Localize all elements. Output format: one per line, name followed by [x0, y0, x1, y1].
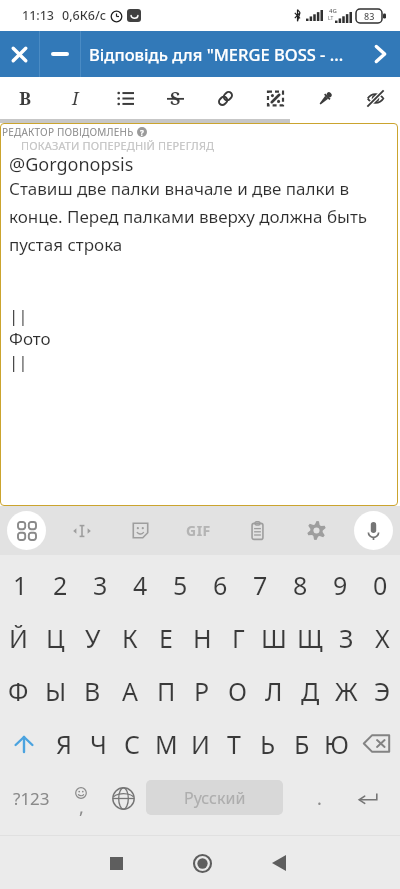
button[interactable]: С [115, 717, 149, 770]
button[interactable]: Emoji and comma [60, 776, 102, 820]
button[interactable]: Ж [328, 664, 364, 717]
staticText: 11:13 [22, 7, 55, 24]
button[interactable]: 1 [0, 558, 40, 611]
button[interactable]: Э [364, 664, 400, 717]
button[interactable]: Clipboard [228, 506, 287, 555]
staticText: 1 [13, 568, 28, 602]
button[interactable]: Strikethrough [150, 77, 200, 119]
button[interactable]: Keyboard options [0, 506, 53, 555]
button[interactable]: П [148, 664, 184, 717]
button[interactable]: М [149, 717, 183, 770]
button[interactable]: Change language [102, 776, 144, 820]
staticText: Я [56, 727, 72, 761]
staticText: Ы [45, 674, 67, 708]
button[interactable]: Send [360, 31, 400, 77]
staticText: 7 [253, 568, 268, 602]
staticText: Н [193, 621, 212, 655]
button[interactable]: Ю [319, 717, 353, 770]
staticText: И [191, 727, 210, 761]
button[interactable]: 0 [360, 558, 400, 611]
button[interactable]: Я [47, 717, 81, 770]
button[interactable]: Ь [251, 717, 285, 770]
staticText: Ставиш две палки вначале и две палки в к… [9, 177, 377, 256]
button[interactable]: Ч [81, 717, 115, 770]
button[interactable]: Русский [146, 780, 283, 815]
button[interactable]: Recents [82, 841, 150, 885]
button[interactable]: Й [0, 611, 37, 664]
button[interactable]: ?123 [4, 776, 58, 820]
staticText: S [170, 86, 181, 111]
button[interactable]: Т [217, 717, 251, 770]
button[interactable]: Б [285, 717, 319, 770]
button[interactable]: Х [364, 611, 400, 664]
staticText: Ж [335, 674, 358, 708]
staticText: РЕДАКТОР ПОВІДОМЛЕНЬ [2, 125, 134, 139]
button[interactable]: А [111, 664, 148, 717]
button[interactable]: Ц [37, 611, 74, 664]
staticText: 83 [364, 10, 375, 22]
button[interactable]: 5 [160, 558, 200, 611]
button[interactable]: Color picker [300, 77, 350, 119]
button[interactable]: GIF [169, 506, 228, 555]
button[interactable]: 3 [80, 558, 120, 611]
button[interactable]: Е [148, 611, 184, 664]
button[interactable]: Back [245, 841, 313, 885]
button[interactable]: Ф [0, 664, 37, 717]
button[interactable]: Backspace [353, 717, 400, 770]
button[interactable]: . [298, 776, 340, 820]
staticText: З [339, 621, 354, 655]
staticText: К [122, 621, 138, 655]
button[interactable]: 6 [200, 558, 240, 611]
button[interactable]: 9 [320, 558, 360, 611]
staticText: В [84, 674, 101, 708]
button[interactable]: Text edit [53, 506, 111, 555]
button[interactable]: К [111, 611, 148, 664]
button[interactable]: 8 [280, 558, 320, 611]
button[interactable]: В [74, 664, 111, 717]
staticText: GIF [186, 521, 211, 540]
button[interactable]: Г [220, 611, 256, 664]
staticText: Фото [9, 327, 51, 350]
staticText: ПОКАЗАТИ ПОПЕРЕДНІЙ ПЕРЕГЛЯД [21, 138, 215, 153]
button[interactable]: 7 [240, 558, 280, 611]
button[interactable]: У [74, 611, 111, 664]
button[interactable]: Щ [292, 611, 328, 664]
staticText: Б [294, 727, 310, 761]
staticText: У [85, 621, 101, 655]
staticText: , [79, 795, 84, 820]
staticText: М [155, 727, 178, 761]
button[interactable]: Л [256, 664, 292, 717]
staticText: Т [227, 727, 241, 761]
button[interactable]: Bold [0, 77, 50, 119]
button[interactable]: Link [200, 77, 250, 119]
button[interactable]: З [328, 611, 364, 664]
button[interactable]: Д [292, 664, 328, 717]
staticText: Русский [184, 787, 246, 809]
button[interactable]: 2 [40, 558, 80, 611]
button[interactable]: Ы [37, 664, 74, 717]
button[interactable]: Italic [50, 77, 100, 119]
button[interactable]: 4 [120, 558, 160, 611]
button[interactable]: Р [184, 664, 220, 717]
button[interactable]: Н [184, 611, 220, 664]
button[interactable]: Enter [344, 776, 392, 820]
staticText: Е [159, 621, 173, 655]
button[interactable]: Hide [350, 77, 400, 119]
staticText: Л [265, 674, 283, 708]
button[interactable]: О [220, 664, 256, 717]
button[interactable]: Home [168, 841, 236, 885]
button[interactable]: Stickers [111, 506, 169, 555]
button[interactable]: Shift [0, 717, 47, 770]
button[interactable]: Minimize [40, 31, 80, 77]
button[interactable]: Spoiler [250, 77, 300, 119]
staticText: B [19, 86, 32, 111]
button[interactable]: Ш [256, 611, 292, 664]
staticText: Ш [261, 621, 287, 655]
button[interactable]: Voice input [346, 506, 400, 555]
button[interactable]: Settings [287, 506, 346, 555]
staticText: 8 [293, 568, 308, 602]
button[interactable]: Close [0, 31, 39, 77]
button[interactable]: И [183, 717, 217, 770]
button[interactable]: List [100, 77, 150, 119]
staticText: Р [194, 674, 210, 708]
